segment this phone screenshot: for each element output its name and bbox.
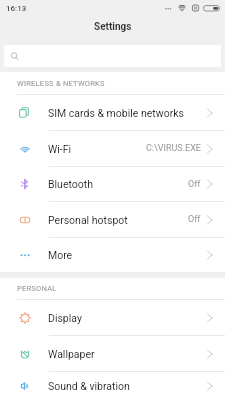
staticText: More — [48, 249, 73, 261]
staticText: Off — [188, 214, 201, 225]
staticText: Wallpaper — [48, 348, 95, 360]
staticText: Off — [188, 179, 201, 190]
staticText: Display — [48, 312, 82, 324]
staticText: Personal hotspot — [48, 214, 128, 226]
button[interactable]: Search settings — [4, 45, 221, 67]
staticText: WIRELESS & NETWORKS — [17, 79, 105, 88]
button[interactable]: Wallpaper — [0, 336, 225, 372]
staticText: Wi-Fi — [48, 143, 72, 155]
staticText: SIM cards & mobile networks — [48, 107, 184, 119]
button[interactable]: Display — [0, 300, 225, 336]
staticText: Settings — [94, 21, 132, 33]
button[interactable]: Wi-Fi — [0, 131, 225, 167]
button[interactable]: SIM cards & mobile networks — [0, 95, 225, 131]
button[interactable]: Bluetooth — [0, 167, 225, 202]
staticText: PERSONAL — [17, 284, 57, 293]
staticText: Bluetooth — [48, 178, 93, 190]
staticText: 16:13 — [6, 4, 27, 13]
staticText: C:\VIRUS.EXE — [146, 143, 201, 154]
staticText: Sound & vibration — [48, 380, 130, 392]
button[interactable]: Personal hotspot — [0, 202, 225, 238]
button[interactable]: More — [0, 238, 225, 272]
button[interactable]: Sound & vibration — [0, 372, 225, 400]
